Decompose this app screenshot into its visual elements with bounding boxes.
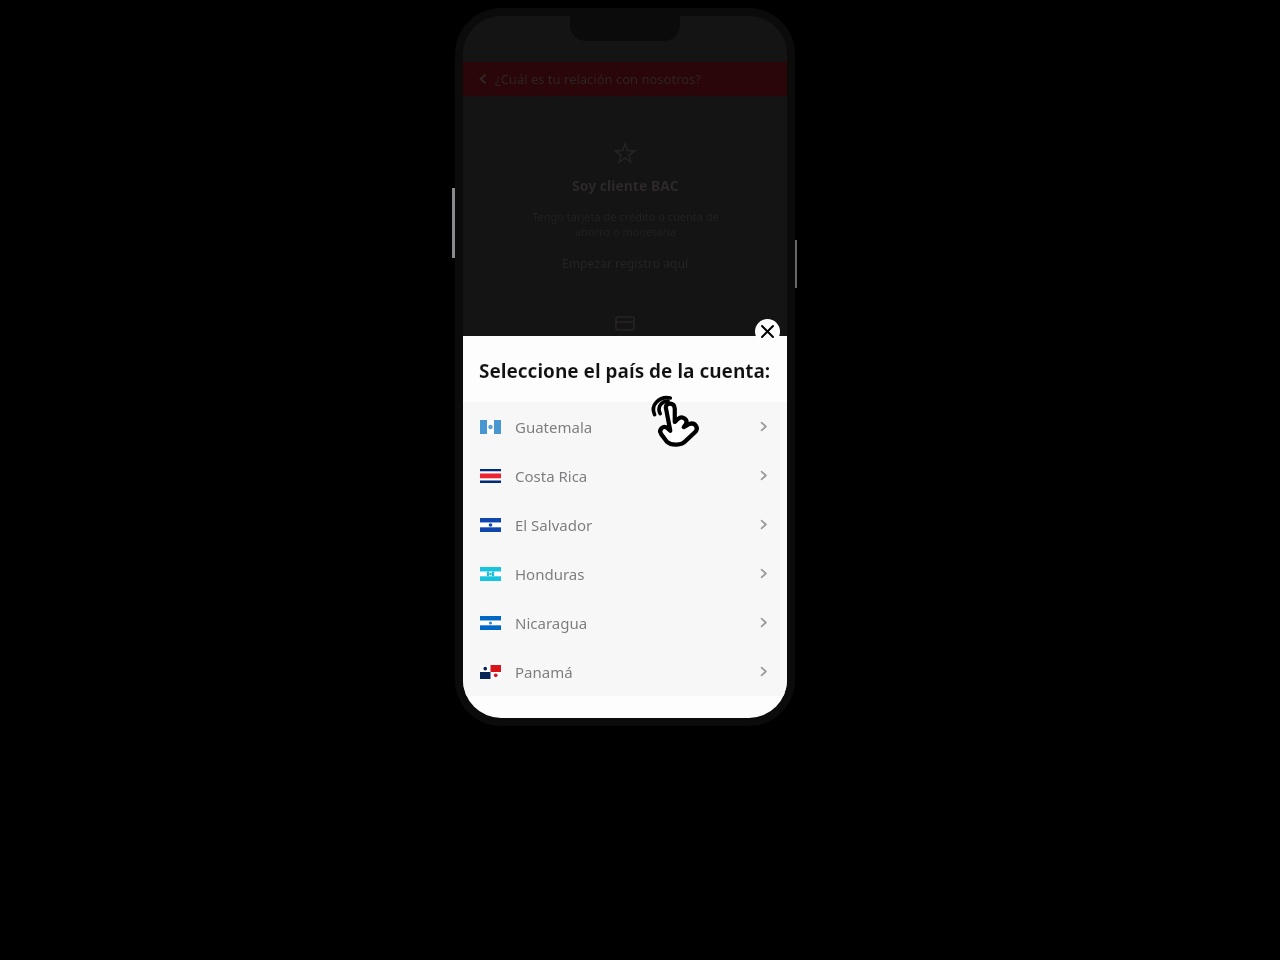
button[interactable]: Costa Rica	[463, 451, 787, 500]
button[interactable]: El Salvador	[463, 500, 787, 549]
staticText: Tengo tarjeta de crédito o cuenta de aho…	[532, 209, 719, 239]
staticText: Nicaragua	[515, 613, 588, 633]
button[interactable]: Cerrar	[755, 319, 780, 344]
button[interactable]: Nicaragua	[463, 598, 787, 647]
staticText: Empezar registro aquí	[562, 255, 689, 271]
staticText: Costa Rica	[515, 466, 588, 486]
button[interactable]: Guatemala	[463, 402, 787, 451]
button[interactable]: Panamá	[463, 647, 787, 696]
button[interactable]: Honduras	[463, 549, 787, 598]
button[interactable]: Back	[463, 62, 787, 96]
staticText: ¿Cuál es tu relación con nosotros?	[495, 70, 701, 88]
staticText: Soy cliente BAC	[572, 176, 679, 195]
staticText: Panamá	[515, 662, 573, 682]
other: Back	[477, 73, 489, 85]
button[interactable]: Empezar registro aquí	[463, 255, 787, 271]
staticText: Honduras	[515, 564, 585, 584]
staticText: Guatemala	[515, 417, 593, 437]
staticText: Seleccione el país de la cuenta:	[479, 358, 771, 384]
staticText: El Salvador	[515, 515, 593, 535]
